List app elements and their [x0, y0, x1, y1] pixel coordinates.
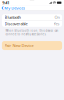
staticText: Yes	[53, 21, 59, 26]
staticText: When Bluetooth is on, this device can co…	[5, 29, 58, 36]
button[interactable]: Discoverable	[2, 21, 62, 27]
staticText: My Devices	[4, 5, 25, 11]
staticText: Bluetooth	[4, 15, 20, 20]
staticText: 9:41	[2, 0, 9, 5]
button[interactable]: Bluetooth	[2, 14, 62, 20]
button[interactable]: My Devices	[0, 5, 25, 11]
button[interactable]: Pair New Device	[2, 41, 62, 50]
staticText: Pair New Device	[4, 43, 33, 48]
staticText: On	[54, 15, 59, 20]
staticText: Discoverable	[4, 21, 27, 26]
